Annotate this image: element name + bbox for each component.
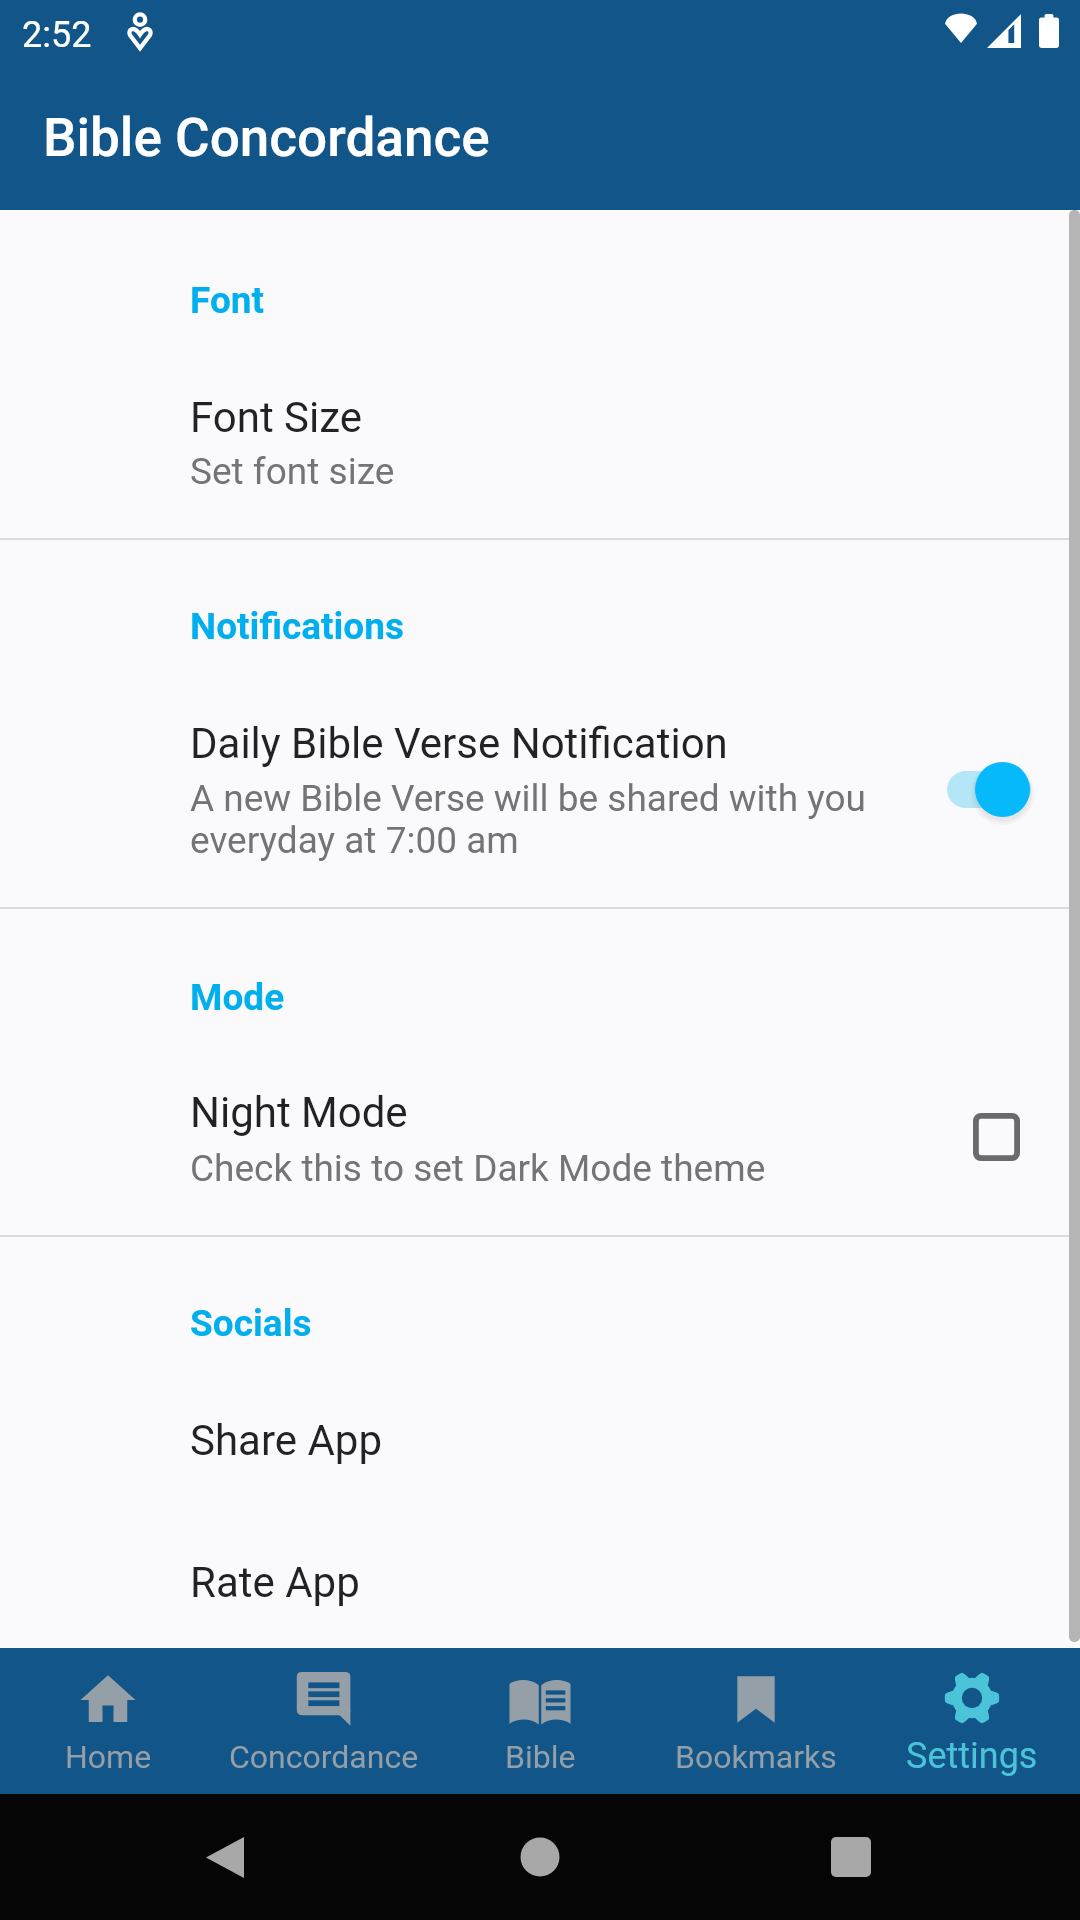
staticText: Set font size bbox=[190, 450, 395, 493]
staticText: Night Mode bbox=[190, 1088, 408, 1137]
staticText: Bible bbox=[505, 1738, 576, 1776]
button[interactable]: Back bbox=[189, 1821, 261, 1893]
button[interactable] bbox=[0, 678, 1080, 908]
button[interactable] bbox=[0, 350, 1080, 540]
staticText: Socials bbox=[190, 1302, 312, 1345]
button[interactable]: Settings bbox=[864, 1648, 1080, 1794]
button[interactable]: Recents bbox=[815, 1821, 887, 1893]
button[interactable]: Night Mode bbox=[961, 1101, 1033, 1173]
button[interactable] bbox=[0, 1048, 1080, 1236]
staticText: Font Size bbox=[190, 393, 363, 442]
staticText: Bookmarks bbox=[675, 1738, 837, 1776]
staticText: 2:52 bbox=[22, 14, 92, 56]
staticText: Share App bbox=[190, 1416, 383, 1465]
button[interactable]: Daily Bible Verse Notification bbox=[935, 750, 1045, 850]
button[interactable]: Concordance bbox=[216, 1648, 432, 1794]
button[interactable]: Home bbox=[504, 1821, 576, 1893]
button[interactable]: Bible bbox=[432, 1648, 648, 1794]
staticText: Mode bbox=[190, 976, 285, 1019]
button[interactable]: Bookmarks bbox=[648, 1648, 864, 1794]
staticText: Font bbox=[190, 279, 265, 322]
button[interactable] bbox=[0, 1375, 1080, 1495]
staticText: Settings bbox=[906, 1735, 1038, 1777]
staticText: A new Bible Verse will be shared with yo… bbox=[190, 777, 866, 820]
staticText: Concordance bbox=[229, 1738, 419, 1776]
staticText: Notifications bbox=[190, 605, 405, 648]
staticText: Check this to set Dark Mode theme bbox=[190, 1147, 766, 1190]
staticText: Daily Bible Verse Notification bbox=[190, 719, 728, 768]
staticText: Rate App bbox=[190, 1558, 360, 1607]
staticText: everyday at 7:00 am bbox=[190, 819, 519, 862]
staticText: Bible Concordance bbox=[43, 107, 490, 169]
button[interactable]: Home bbox=[0, 1648, 216, 1794]
button[interactable] bbox=[0, 1517, 1080, 1637]
staticText: Home bbox=[65, 1738, 152, 1776]
